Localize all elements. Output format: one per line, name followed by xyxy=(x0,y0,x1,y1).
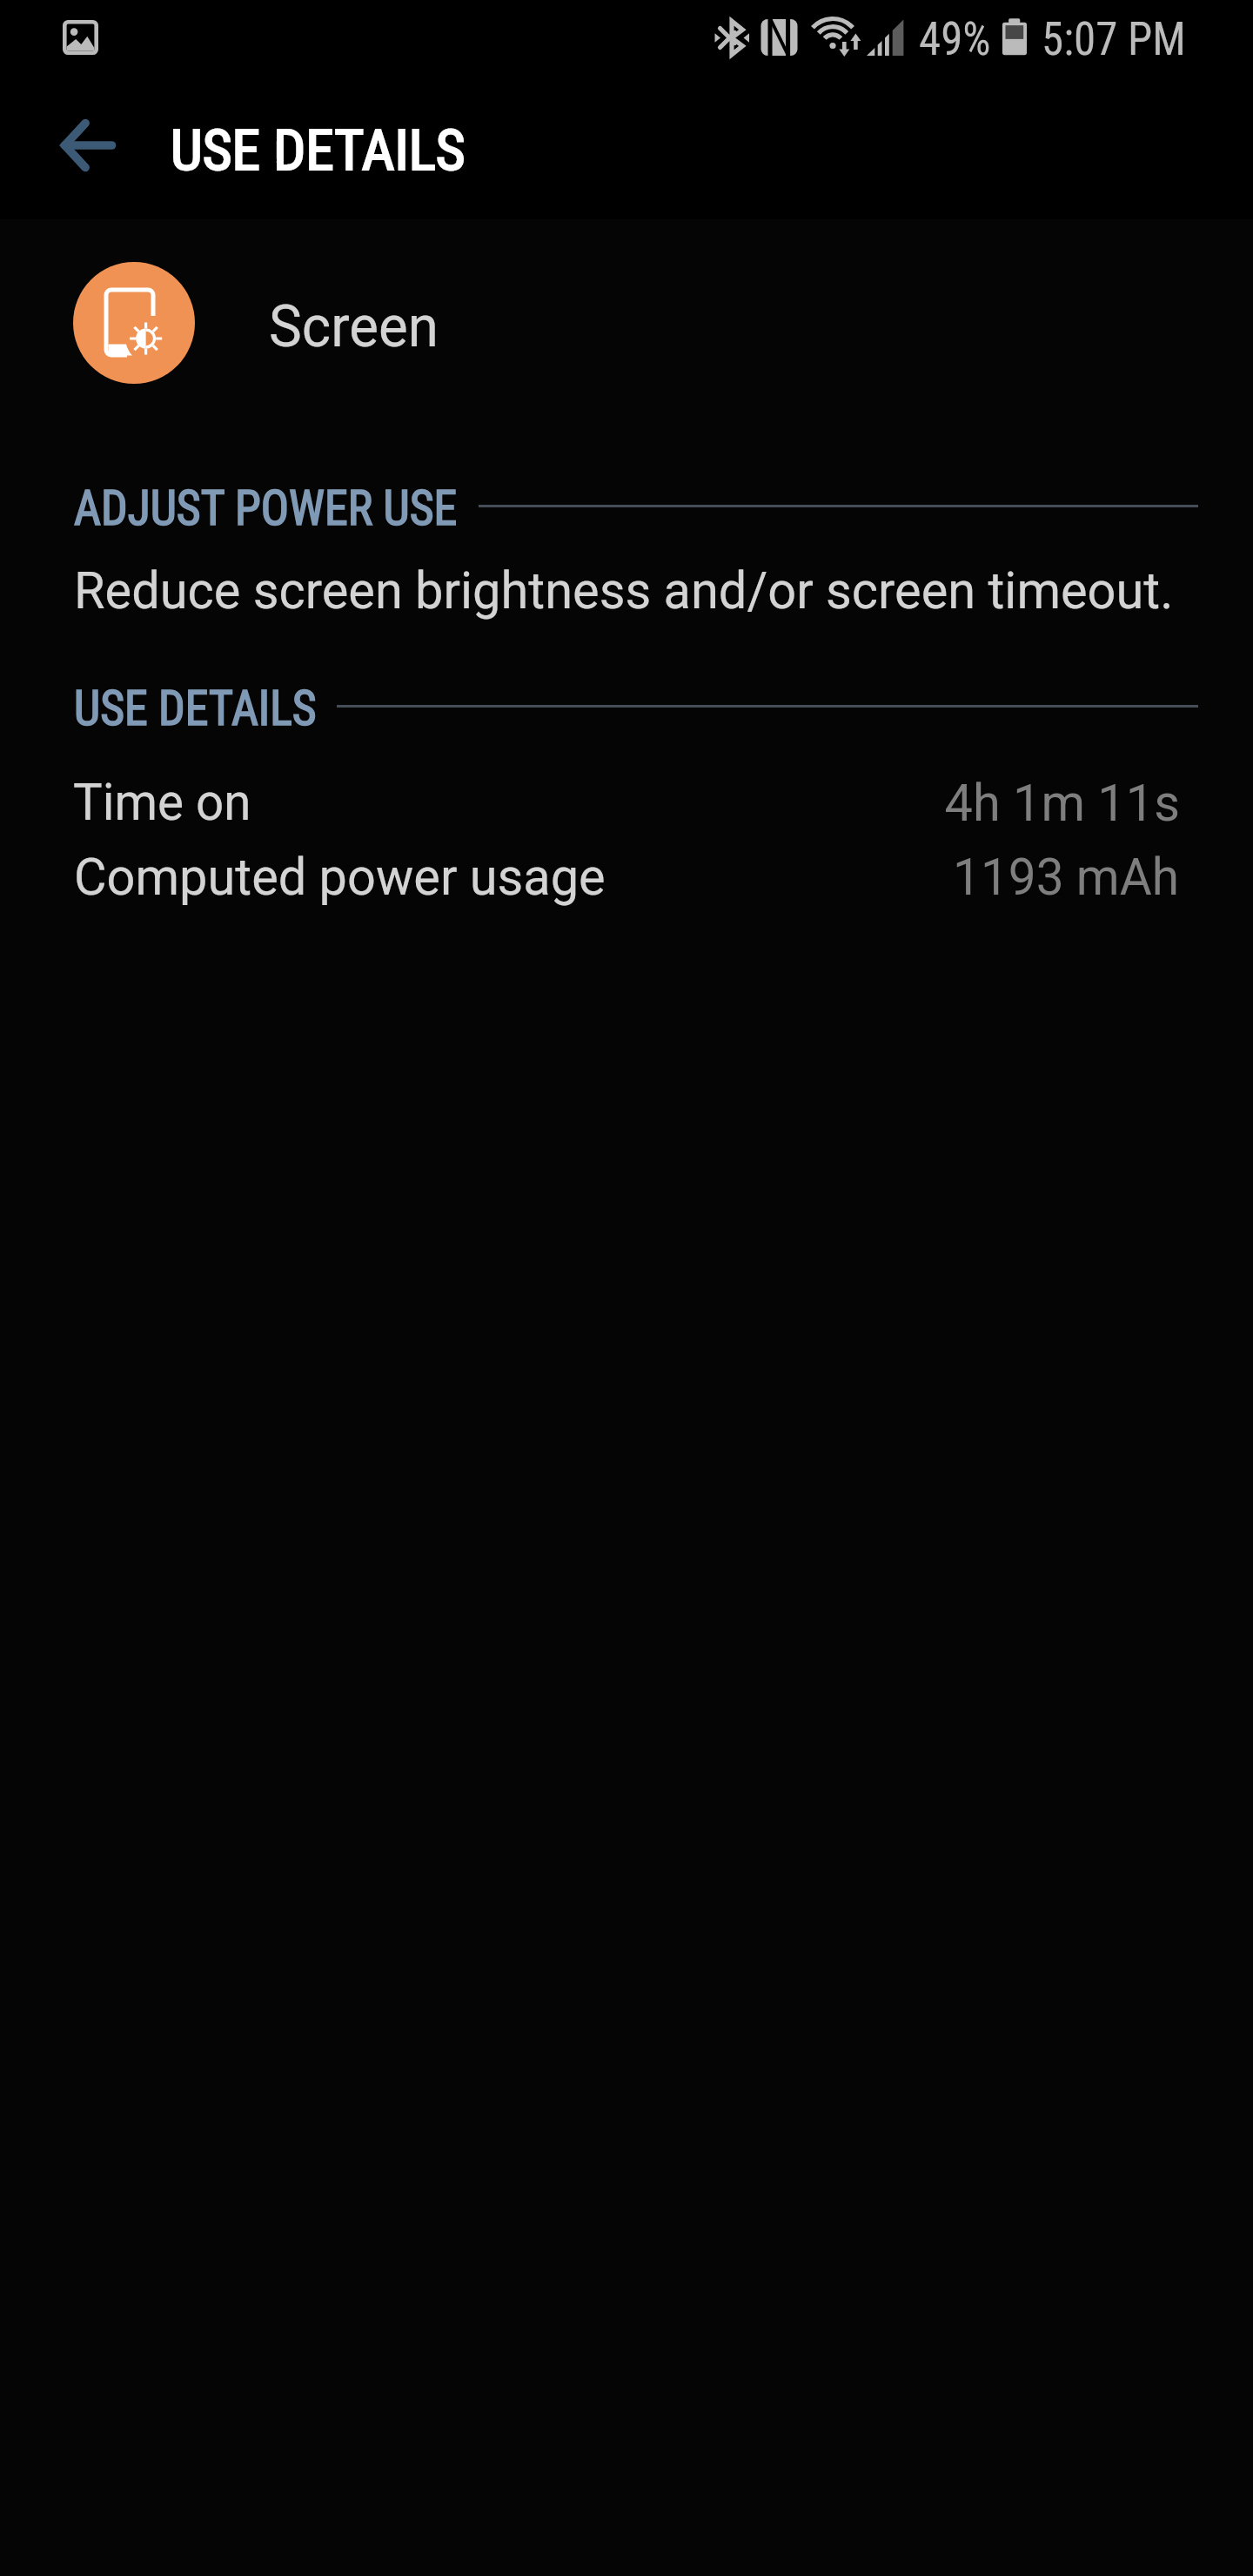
staticText: 5:07 PM xyxy=(1042,11,1186,66)
staticText: Reduce screen brightness and/or screen t… xyxy=(74,560,1174,621)
staticText: USE DETAILS xyxy=(74,681,317,736)
staticText: 49% xyxy=(919,11,991,66)
staticText: 4h 1m 11s xyxy=(26,773,1180,833)
staticText: Time on xyxy=(73,772,251,832)
button[interactable]: Navigate up xyxy=(35,94,139,198)
staticText: Screen xyxy=(269,293,438,360)
staticText: USE DETAILS xyxy=(171,118,465,184)
staticText: 1193 mAh xyxy=(44,847,1179,907)
staticText: Computed power usage xyxy=(74,847,606,907)
staticText: ADJUST POWER USE xyxy=(74,480,457,536)
button[interactable] xyxy=(0,219,1253,426)
